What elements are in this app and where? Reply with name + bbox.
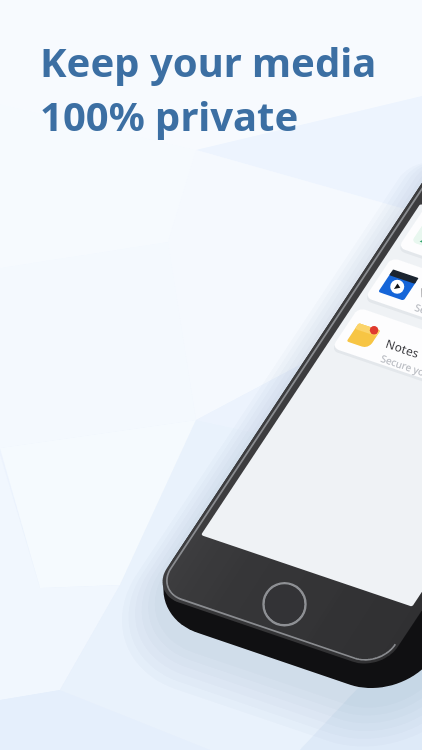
- staticText: Keep your media: [40, 34, 377, 88]
- staticText: Videos: [418, 284, 422, 312]
- staticText: Notes: [384, 335, 421, 361]
- staticText: 100% private: [40, 88, 299, 142]
- staticText: Secure your videos: [413, 300, 422, 342]
- staticText: Secure your notes: [379, 351, 422, 392]
